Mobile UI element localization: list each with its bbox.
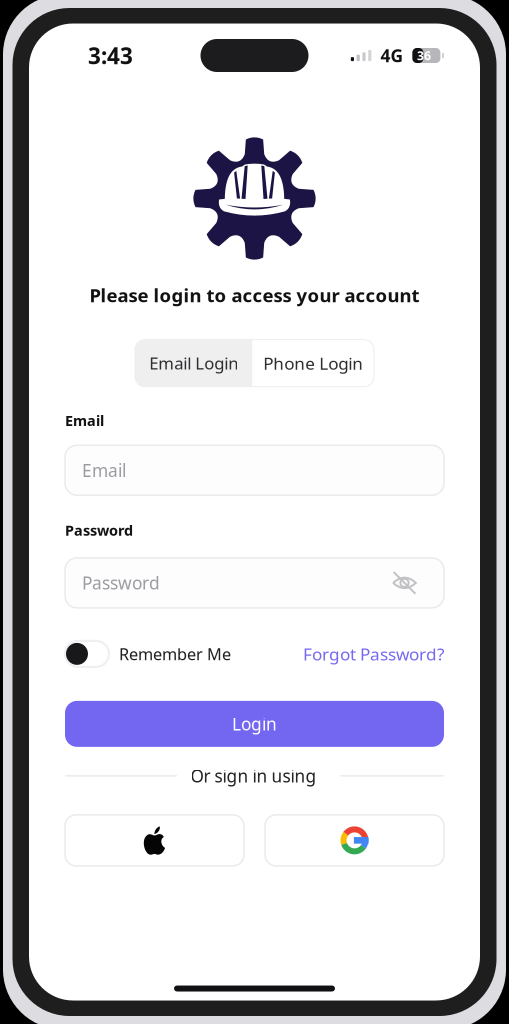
staticText: Email Login: [149, 352, 238, 374]
button[interactable]: Forgot Password?: [303, 642, 444, 665]
staticText: 36: [417, 47, 431, 64]
button[interactable]: Sign in with Google: [265, 815, 444, 866]
button[interactable]: Sign in with Apple: [65, 815, 244, 866]
staticText: Forgot Password?: [303, 642, 444, 665]
staticText: Or sign in using: [190, 764, 316, 788]
staticText: Phone Login: [263, 351, 363, 375]
staticText: Remember Me: [119, 643, 231, 665]
button[interactable]: Email Login: [135, 340, 252, 387]
staticText: Please login to access your account: [89, 282, 419, 308]
staticText: Password: [82, 571, 160, 595]
button[interactable]: Password: [65, 558, 444, 608]
staticText: Email: [82, 458, 126, 482]
staticText: 4G: [380, 44, 403, 67]
staticText: 3:43: [88, 40, 133, 71]
staticText: Login: [232, 712, 277, 736]
staticText: Password: [65, 520, 133, 540]
button[interactable]: Phone Login: [252, 340, 374, 387]
staticText: Email: [65, 411, 104, 430]
button[interactable]: Email: [65, 445, 444, 495]
button[interactable]: Remember Me: [65, 641, 231, 667]
button[interactable]: Login: [65, 701, 444, 747]
